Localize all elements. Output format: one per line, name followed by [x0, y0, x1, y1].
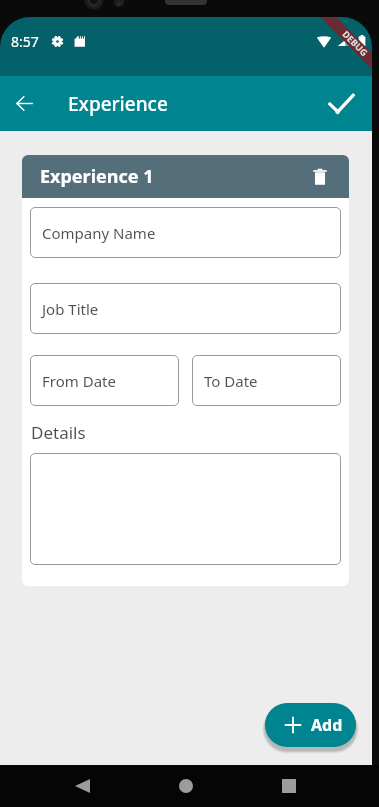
- button[interactable]: Back: [64, 774, 100, 798]
- staticText: Experience 1: [40, 164, 154, 189]
- button[interactable]: Back: [0, 76, 49, 131]
- staticText: Company Name: [42, 223, 156, 243]
- staticText: To Date: [204, 371, 258, 391]
- button[interactable]: To Date: [192, 355, 341, 406]
- button[interactable]: [30, 453, 341, 565]
- button[interactable]: Home: [168, 774, 204, 798]
- staticText: 8:57: [11, 32, 39, 51]
- button[interactable]: Delete: [303, 160, 337, 194]
- button[interactable]: Add: [265, 703, 356, 747]
- staticText: Details: [31, 421, 86, 444]
- staticText: Add: [311, 714, 343, 736]
- staticText: From Date: [42, 371, 116, 391]
- button[interactable]: From Date: [30, 355, 179, 406]
- staticText: DEBUG: [340, 28, 371, 58]
- staticText: Experience: [68, 91, 168, 117]
- button[interactable]: Job Title: [30, 283, 341, 334]
- button[interactable]: Company Name: [30, 207, 341, 258]
- button[interactable]: Recent apps: [271, 774, 307, 798]
- staticText: Job Title: [42, 299, 99, 319]
- button[interactable]: Save: [310, 76, 372, 131]
